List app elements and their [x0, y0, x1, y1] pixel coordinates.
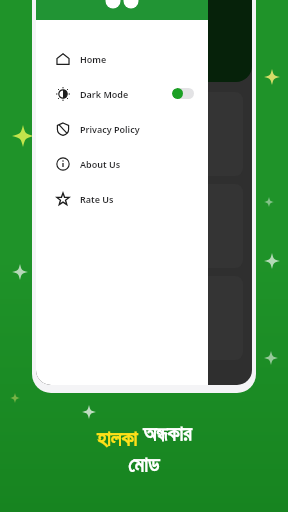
button[interactable]: Rate Us [36, 181, 208, 216]
button[interactable]: Home [36, 41, 208, 76]
button[interactable]: Privacy Policy [36, 111, 208, 146]
staticText: Rate Us [80, 193, 114, 205]
staticText: Privacy Policy [80, 123, 140, 135]
staticText: Home [80, 53, 107, 65]
staticText: অন্ধকার [143, 424, 192, 445]
button[interactable]: Toggle dark mode [172, 88, 194, 99]
staticText: About Us [80, 158, 121, 170]
staticText: মোড [128, 455, 160, 476]
staticText: হালকা [97, 424, 143, 453]
button[interactable]: Dark Mode [36, 76, 208, 111]
button[interactable]: About Us [36, 146, 208, 181]
staticText: Dark Mode [80, 88, 129, 100]
